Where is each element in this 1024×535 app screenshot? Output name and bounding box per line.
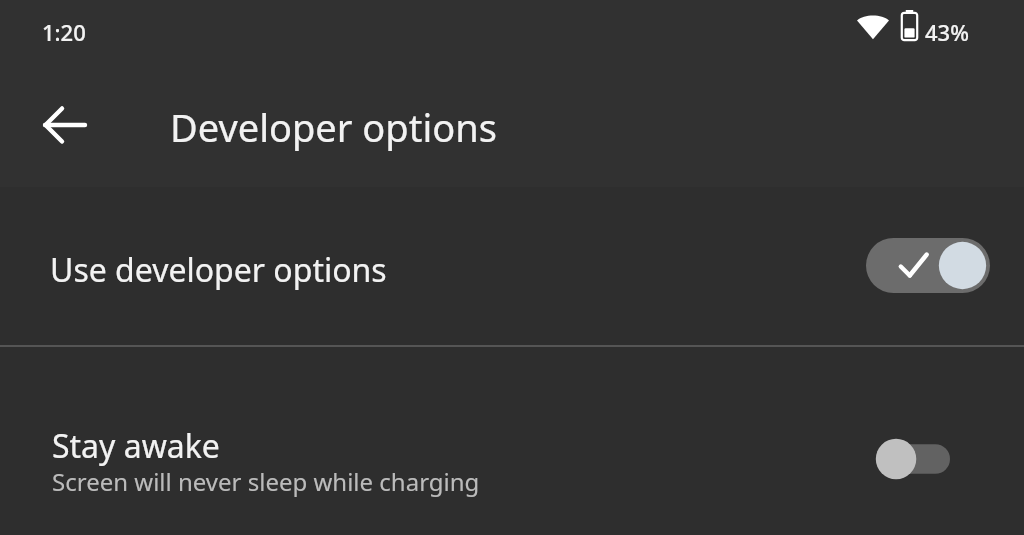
- button[interactable]: Back: [28, 89, 100, 161]
- staticText: 1:20: [42, 17, 86, 47]
- staticText: 43%: [925, 17, 969, 47]
- button[interactable]: Stay awake: [874, 436, 950, 482]
- button[interactable]: [0, 187, 1024, 344]
- staticText: Developer options: [170, 101, 497, 153]
- button[interactable]: [0, 347, 1024, 535]
- button[interactable]: Use developer options: [866, 238, 990, 293]
- staticText: Screen will never sleep while charging: [52, 465, 480, 498]
- staticText: Use developer options: [50, 248, 387, 292]
- staticText: Stay awake: [52, 424, 220, 468]
